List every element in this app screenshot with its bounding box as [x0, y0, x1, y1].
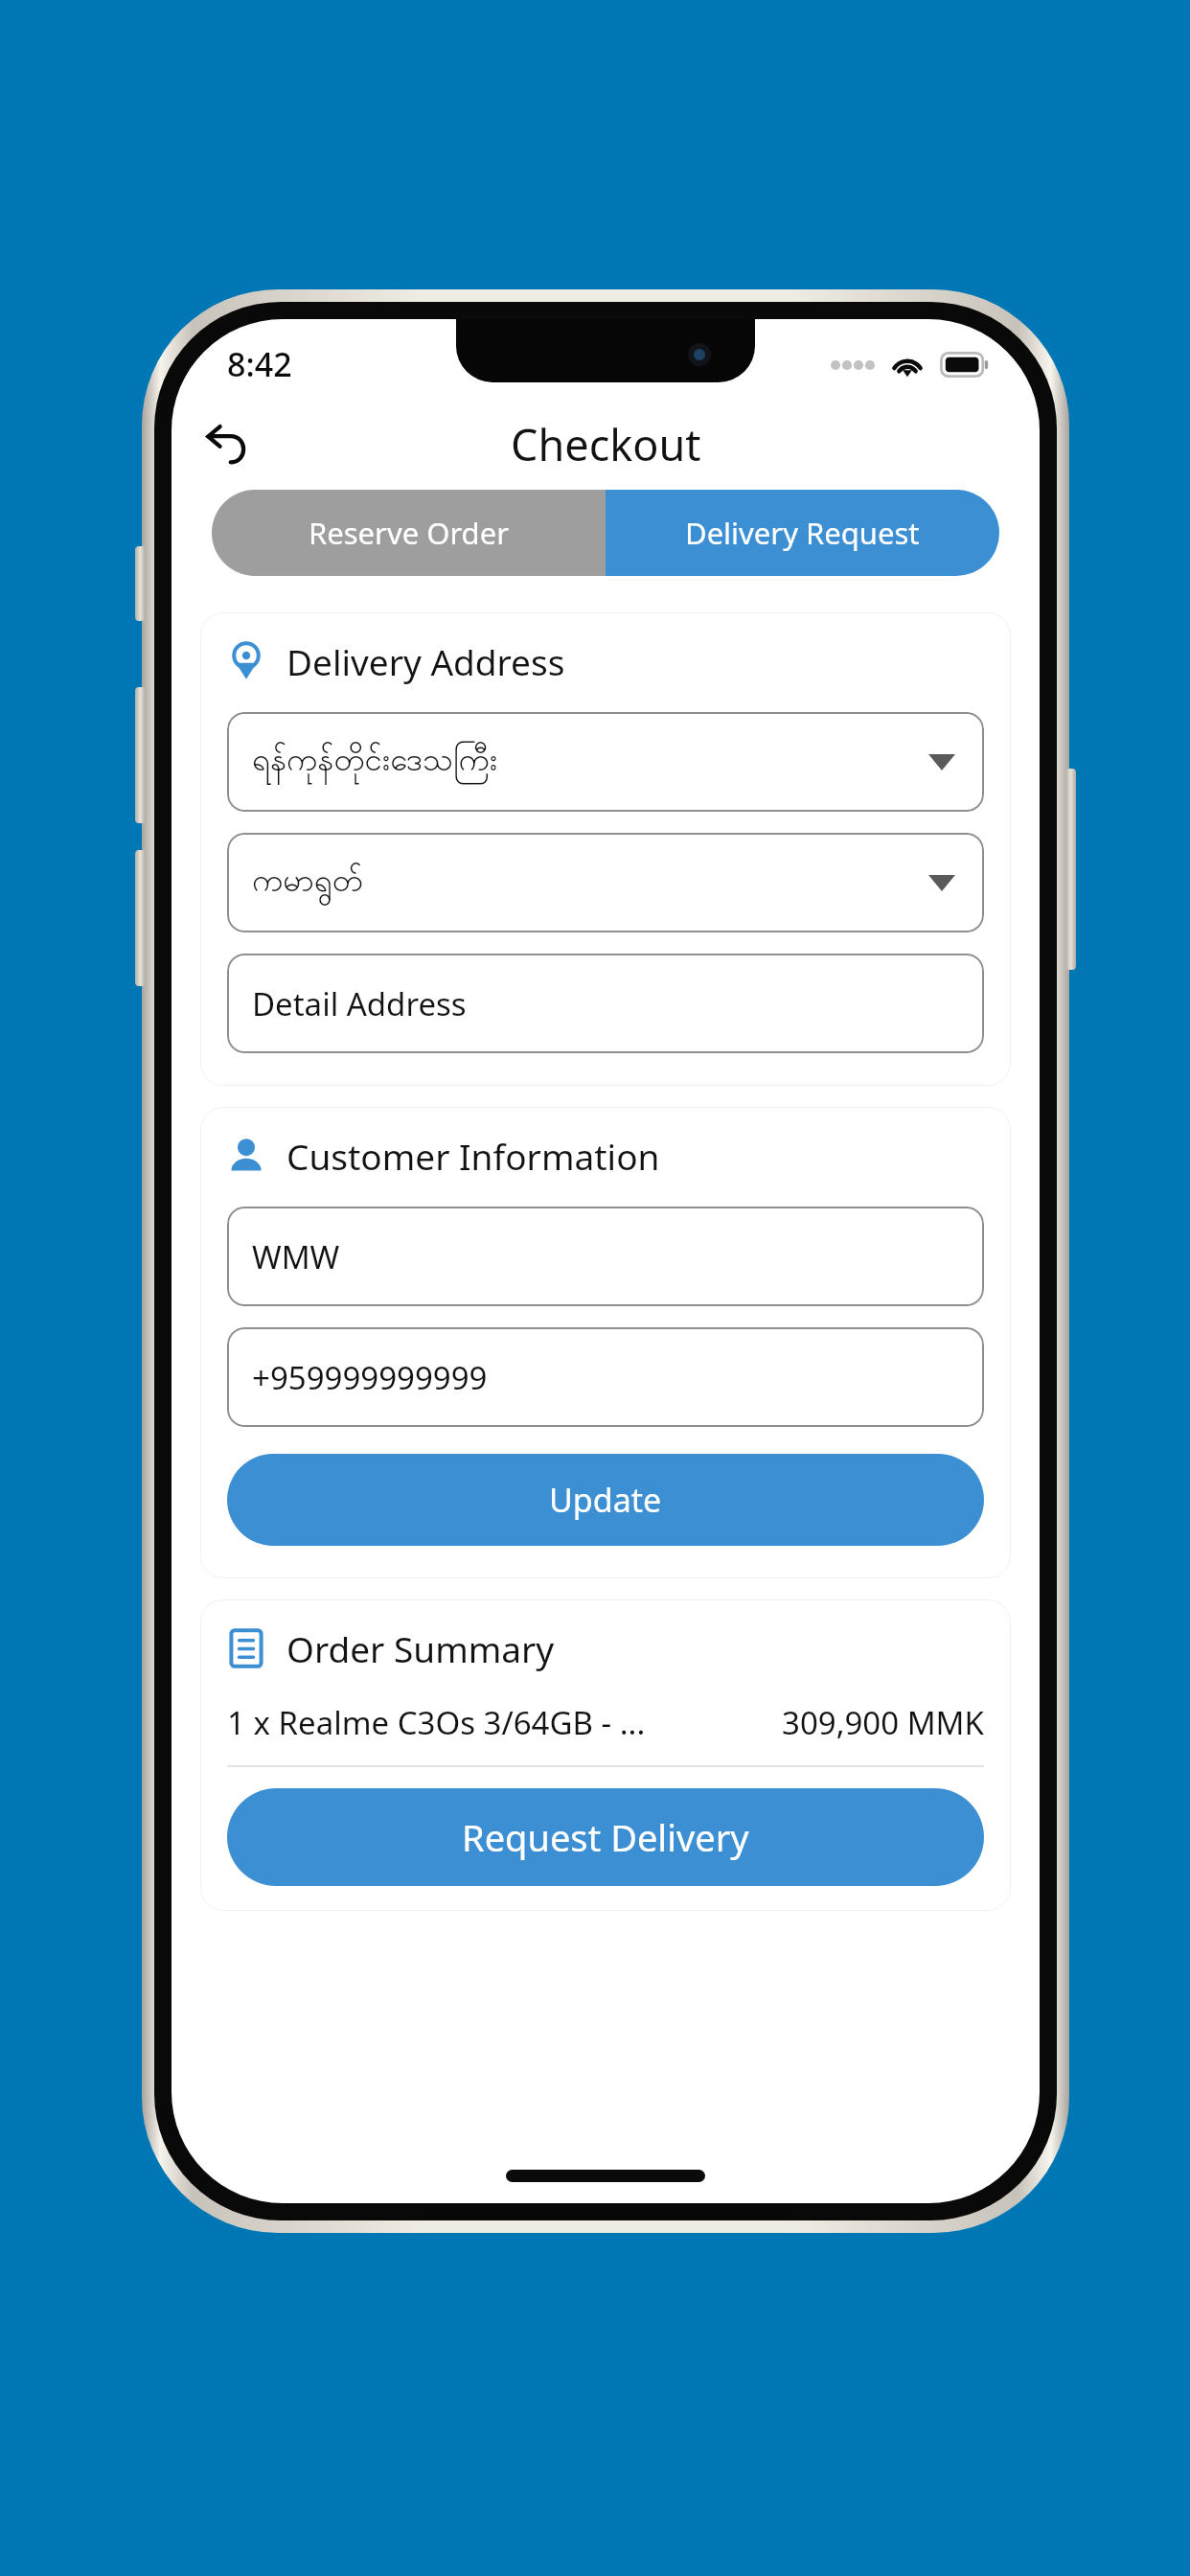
staticText: +959999999999 [252, 1356, 488, 1399]
staticText: WMW [252, 1235, 340, 1278]
button[interactable]: Back [187, 403, 267, 484]
button[interactable]: ကမာရွတ် [227, 833, 984, 932]
staticText: 8:42 [227, 342, 292, 386]
button[interactable]: WMW [227, 1207, 984, 1306]
staticText: Detail Address [252, 982, 467, 1025]
button[interactable]: ရန်ကုန်တိုင်းဒေသကြီး [227, 712, 984, 812]
button[interactable]: Reserve Order [212, 490, 606, 576]
staticText: Checkout [511, 415, 701, 473]
staticText: ကမာရွတ် [252, 860, 363, 907]
staticText: Update [549, 1478, 662, 1522]
button[interactable]: Delivery Request [606, 490, 999, 576]
button[interactable]: +959999999999 [227, 1327, 984, 1427]
staticText: Reserve Order [309, 513, 509, 553]
staticText: ရန်ကုန်တိုင်းဒေသကြီး [252, 739, 498, 786]
button[interactable]: Request Delivery [227, 1788, 984, 1886]
staticText: 1 x Realme C3Os 3/64GB - ... [227, 1701, 646, 1744]
staticText: Delivery Address [286, 637, 565, 685]
staticText: Request Delivery [462, 1812, 749, 1862]
staticText: Delivery Request [685, 513, 920, 553]
button[interactable]: Update [227, 1454, 984, 1546]
staticText: Customer Information [286, 1132, 660, 1180]
button[interactable]: Detail Address [227, 954, 984, 1053]
staticText: 309,900 MMK [782, 1701, 984, 1744]
staticText: Order Summary [286, 1624, 555, 1672]
